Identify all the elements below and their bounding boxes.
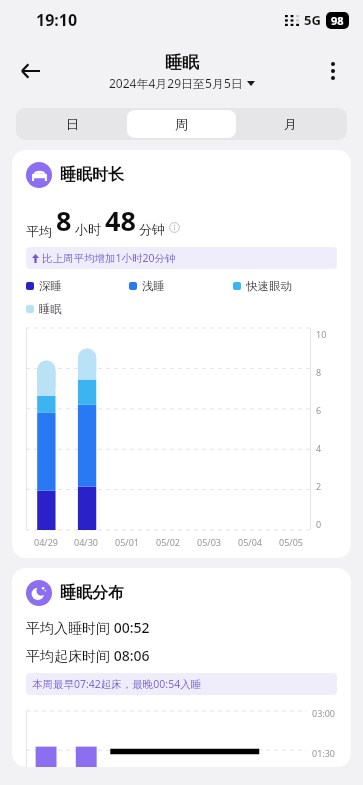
button[interactable]: 睡眠分布 (12, 568, 351, 767)
staticText: 04/29 (34, 536, 58, 548)
staticText: 05/01 (115, 536, 139, 548)
staticText: 平均起床时间 08:06 (26, 646, 150, 665)
staticText: 日 (66, 116, 79, 132)
staticText: 98 (331, 13, 344, 28)
staticText: 平均入睡时间 00:52 (26, 618, 150, 637)
staticText: 4 (316, 442, 322, 454)
staticText: 月 (284, 116, 297, 132)
staticText: 睡眠 (165, 52, 199, 73)
staticText: 2 (316, 480, 322, 492)
button[interactable]: 月 (236, 110, 345, 138)
staticText: 5G (304, 11, 321, 29)
staticText: 05/03 (197, 536, 221, 548)
staticText: 05/05 (279, 536, 303, 548)
button[interactable]: 周 (127, 110, 236, 138)
staticText: 深睡 (39, 279, 62, 293)
staticText: 分钟 (139, 221, 165, 237)
staticText: 8 (56, 202, 72, 239)
staticText: 2024年4月29日至5月5日 (109, 75, 243, 91)
staticText: 快速眼动 (246, 279, 292, 293)
staticText: 05/02 (156, 536, 180, 548)
staticText: 48 (105, 202, 136, 239)
staticText: 19:10 (36, 9, 78, 31)
staticText: 睡眠分布 (60, 583, 124, 603)
button[interactable]: 睡眠时长 (12, 150, 351, 558)
button[interactable]: 2024年4月29日至5月5日 (109, 75, 255, 91)
staticText: 05/04 (238, 536, 262, 548)
staticText: 周 (175, 116, 188, 132)
staticText: 8 (316, 366, 322, 378)
staticText: 睡眠时长 (60, 165, 124, 185)
staticText: 比上周平均增加1小时20分钟 (42, 251, 176, 265)
staticText: 01:30 (312, 747, 336, 759)
staticText: 10 (316, 328, 327, 340)
staticText: 本周最早07:42起床，最晚00:54入睡 (32, 677, 202, 691)
staticText: 6 (316, 404, 322, 416)
staticText: 平均 (26, 223, 52, 239)
staticText: 0 (316, 518, 322, 530)
button[interactable]: 日 (18, 110, 127, 138)
staticText: 小时 (75, 221, 101, 237)
staticText: 浅睡 (142, 279, 165, 293)
button[interactable]: Back (10, 51, 50, 91)
button[interactable]: More options (313, 51, 353, 91)
staticText: 03:00 (312, 707, 336, 719)
staticText: 睡眠 (39, 302, 62, 316)
staticText: 04/30 (74, 536, 98, 548)
